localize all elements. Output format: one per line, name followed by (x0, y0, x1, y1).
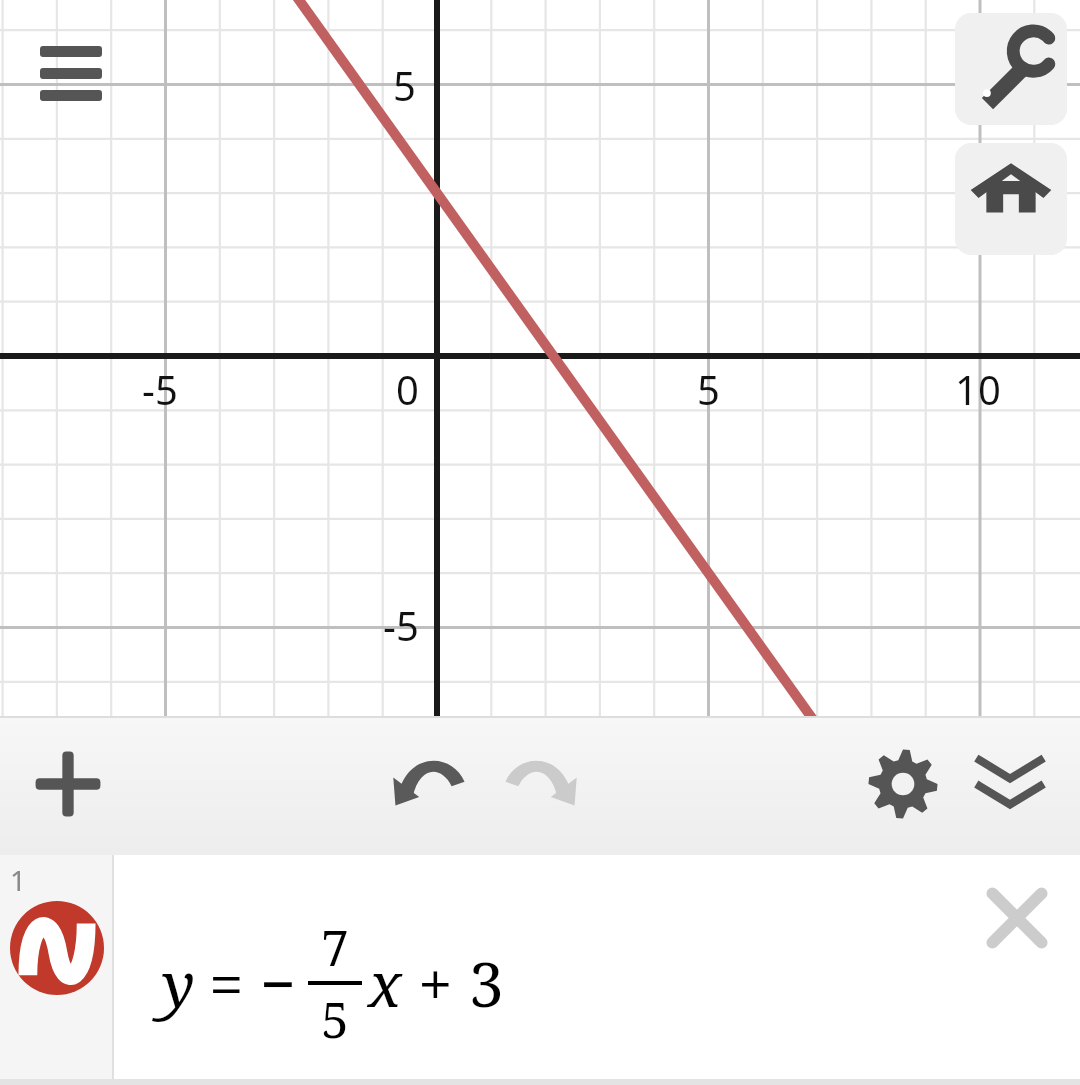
button[interactable]: Collapse (956, 730, 1064, 838)
button[interactable]: Menu (30, 38, 112, 98)
button[interactable]: Add expression (14, 730, 122, 838)
staticText: 5 (393, 58, 416, 112)
staticText: 3 (469, 941, 504, 1025)
button[interactable]: Undo (376, 730, 484, 838)
button[interactable]: y (114, 855, 1080, 1085)
staticText: 0 (396, 362, 419, 416)
staticText: − (260, 941, 296, 1025)
staticText: 10 (955, 362, 1001, 416)
staticText: -5 (142, 362, 178, 416)
staticText: -5 (383, 598, 419, 652)
button[interactable]: Redo (486, 730, 594, 838)
button[interactable]: Home (955, 143, 1067, 255)
button[interactable]: Expression 1 color (0, 855, 112, 1085)
staticText: 5 (697, 362, 720, 416)
staticText: x (368, 941, 402, 1025)
button[interactable]: Settings (955, 13, 1067, 125)
staticText: = (209, 941, 244, 1025)
button[interactable]: Delete expression (976, 877, 1058, 959)
button[interactable]: Graph settings (849, 730, 957, 838)
staticText: + (418, 941, 453, 1025)
staticText: 7 (321, 913, 349, 981)
staticText: 1 (10, 861, 27, 899)
staticText: y (162, 941, 195, 1025)
staticText: 5 (321, 985, 349, 1053)
